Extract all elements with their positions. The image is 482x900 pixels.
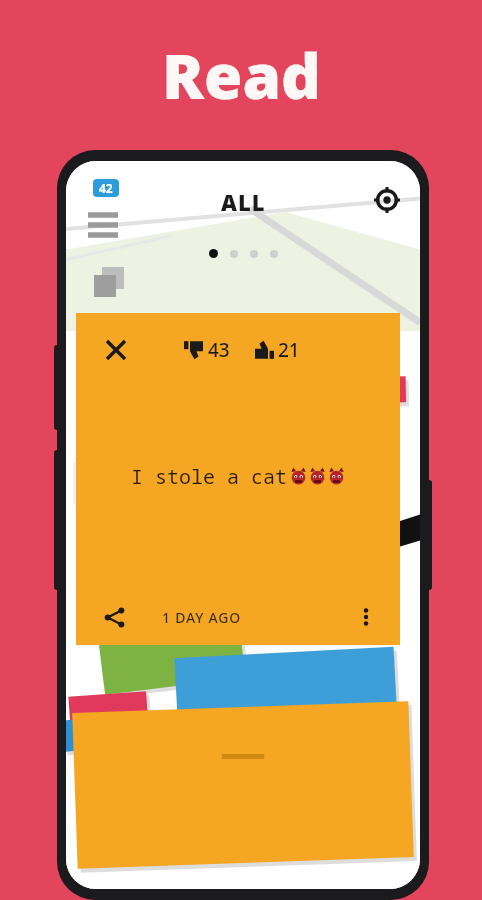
button[interactable]: Menu, 42 new [86,179,134,227]
button[interactable]: Share [94,597,134,637]
staticText: Read [162,33,321,117]
button[interactable]: Layers [92,265,126,299]
staticText: 43 [208,337,230,363]
staticText: ALL [221,187,266,217]
button[interactable]: More options [346,597,386,637]
button[interactable]: My location [370,183,404,217]
button[interactable]: 43 [182,337,232,363]
button[interactable]: Close [96,330,136,370]
staticText: 1 DAY AGO [162,608,241,627]
staticText: 21 [278,337,300,363]
staticText: I stole a cat [131,463,287,490]
staticText: 42 [99,180,113,196]
button[interactable]: 21 [252,337,302,363]
